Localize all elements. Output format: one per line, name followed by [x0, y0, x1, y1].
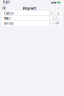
staticText: 24.1 kg: [49, 12, 60, 15]
staticText: Energy: [4, 22, 13, 25]
button[interactable]: Back: [2, 5, 7, 11]
staticText: 1,250 L: [49, 17, 60, 20]
staticText: 9:41: [3, 1, 10, 4]
staticText: 8.4 kWh: [49, 22, 60, 25]
button[interactable]: Carbon: [2, 11, 62, 16]
staticText: Water: [4, 17, 11, 20]
button[interactable]: Water: [2, 16, 62, 21]
staticText: Impact: [22, 5, 36, 11]
button[interactable]: Energy: [2, 21, 62, 26]
staticText: Carbon: [4, 12, 14, 15]
